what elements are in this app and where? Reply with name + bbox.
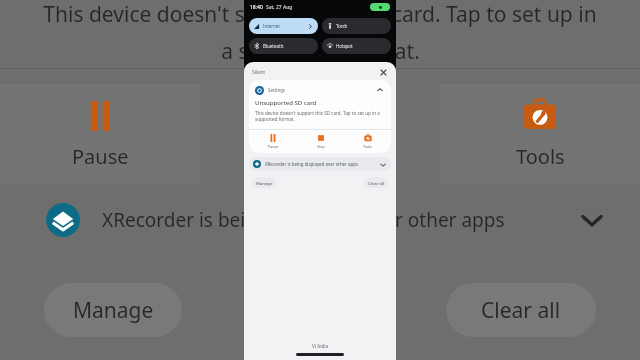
staticText: Torch	[336, 23, 348, 29]
button[interactable]: Manage	[44, 283, 182, 337]
staticText: This device doesn't support this SD card…	[255, 110, 385, 123]
staticText: Hotspot	[336, 43, 353, 49]
staticText: Pause	[268, 144, 279, 149]
staticText: Stop	[317, 144, 325, 149]
staticText: XRecorder is being displayed over other …	[102, 207, 505, 233]
staticText: Manage	[256, 180, 273, 186]
staticText: Bluetooth	[263, 43, 284, 49]
button[interactable]: Bluetooth	[249, 38, 318, 54]
staticText: Vi India	[312, 343, 329, 349]
staticText: Tools	[363, 144, 372, 149]
staticText: Settings	[268, 87, 286, 93]
button[interactable]: Tools	[344, 134, 391, 149]
button[interactable]: Hotspot	[322, 38, 391, 54]
staticText: 18:40	[250, 4, 263, 11]
staticText: XRecorder is being displayed over other …	[265, 161, 359, 167]
button[interactable]: Pause	[249, 134, 297, 149]
staticText: Clear all	[481, 296, 561, 325]
button[interactable]: Settings	[249, 80, 391, 153]
button[interactable]: XRecorder is being displayed over other …	[249, 157, 391, 171]
button[interactable]: Collapse	[375, 85, 385, 95]
button[interactable]: Internet	[249, 18, 318, 34]
button[interactable]: XRecorder is being displayed over other …	[0, 185, 640, 255]
staticText: Pause	[72, 143, 129, 170]
staticText: Silent	[252, 69, 266, 76]
button[interactable]: Torch	[322, 18, 391, 34]
staticText: Clear all	[368, 180, 385, 186]
button[interactable]: Clear all	[364, 177, 388, 188]
button[interactable]: Expand	[378, 160, 387, 169]
staticText: Sat, 27 Aug	[266, 4, 293, 11]
button[interactable]: Stop	[297, 134, 344, 149]
staticText: Tools	[516, 143, 565, 170]
staticText: Manage	[73, 296, 154, 325]
staticText: a supported format.	[221, 37, 420, 66]
button[interactable]: Clear all	[446, 283, 596, 337]
staticText: This device doesn't support this SD card…	[43, 0, 597, 29]
staticText: Unsupported SD card	[255, 99, 317, 107]
button[interactable]: Manage	[252, 177, 276, 188]
staticText: Internet	[263, 23, 280, 29]
button[interactable]: Tools	[440, 84, 640, 184]
button[interactable]: Close	[378, 67, 388, 77]
button[interactable]: Pause	[0, 84, 200, 184]
